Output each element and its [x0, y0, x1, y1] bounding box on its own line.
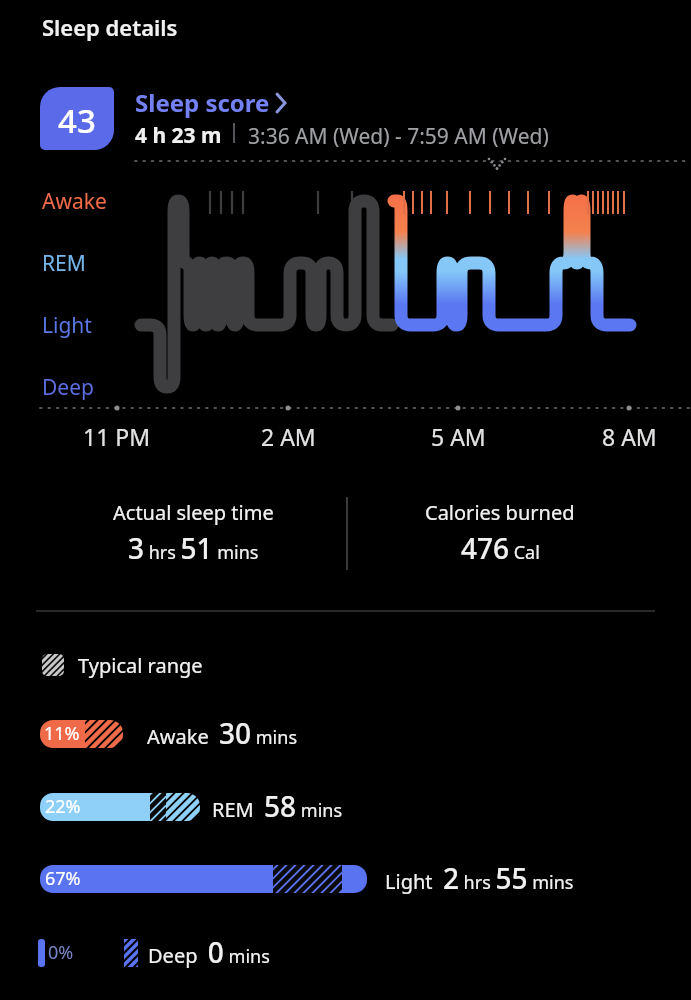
staticText: 3:36 AM (Wed) - 7:59 AM (Wed) [248, 122, 549, 151]
staticText: Sleep score [135, 86, 270, 119]
staticText: 4 h 23 m [135, 121, 222, 150]
staticText: 3 hrs 51 mins [128, 529, 259, 567]
staticText: Light 2 hrs 55 mins [385, 859, 574, 897]
staticText: 8 AM [602, 421, 657, 452]
staticText: Deep [42, 373, 94, 402]
staticText: Actual sleep time [113, 499, 274, 526]
staticText: 22% [45, 794, 81, 819]
staticText: Light [42, 311, 92, 340]
staticText: Awake [42, 187, 107, 216]
staticText: Sleep details [42, 12, 178, 42]
staticText: Awake 30 mins [147, 714, 298, 752]
staticText: 476 Cal [461, 529, 540, 567]
staticText: 43 [58, 98, 96, 138]
staticText: 11% [44, 721, 80, 746]
staticText: REM [42, 249, 86, 278]
staticText: Deep 0 mins [148, 933, 270, 971]
staticText: Typical range [78, 652, 203, 679]
staticText: Calories burned [425, 499, 575, 526]
staticText: 2 AM [261, 421, 316, 452]
button[interactable]: Sleep score [130, 84, 300, 120]
staticText: 0% [48, 940, 74, 965]
staticText: 11 PM [83, 421, 151, 452]
staticText: REM 58 mins [212, 787, 343, 825]
staticText: 67% [45, 866, 81, 891]
staticText: 5 AM [431, 421, 486, 452]
